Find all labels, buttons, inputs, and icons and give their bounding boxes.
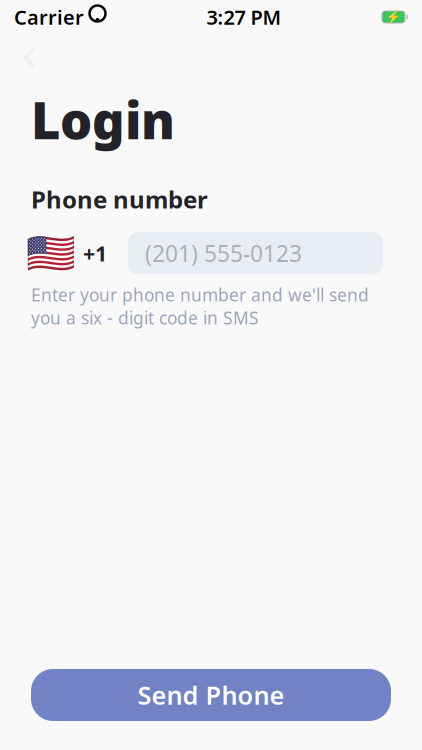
staticText: (201) 555-0123 <box>145 238 302 268</box>
staticText: Carrier <box>14 4 84 30</box>
staticText: Send Phone <box>137 678 284 712</box>
button[interactable]: (201) 555-0123 <box>128 232 383 274</box>
staticText: +1 <box>83 239 107 267</box>
staticText: ⚡ <box>386 10 401 24</box>
staticText: ‹ <box>21 16 38 86</box>
staticText: 3:27 PM <box>206 4 281 30</box>
staticText: 🇺🇸 <box>26 230 76 276</box>
staticText: Phone number <box>31 183 208 215</box>
staticText: Enter your phone number and we'll send y… <box>31 283 369 329</box>
button[interactable]: Send Phone <box>31 669 391 721</box>
staticText: Login <box>31 86 175 153</box>
